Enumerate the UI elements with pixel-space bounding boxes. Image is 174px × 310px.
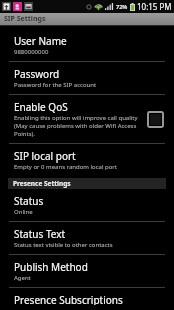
staticText: Presence Subscriptions	[14, 293, 123, 305]
button[interactable]: Status	[0, 189, 174, 221]
staticText: Online	[14, 208, 33, 216]
staticText: Publish Method	[14, 260, 88, 274]
button[interactable]: Publish Method	[0, 255, 174, 287]
staticText: Status text visible to other contacts	[14, 241, 113, 249]
button[interactable]: Enable QoS	[0, 95, 174, 143]
staticText: SIP Settings	[4, 14, 46, 24]
staticText: Password	[14, 67, 60, 81]
staticText: 10:15 PM	[137, 1, 172, 12]
staticText: User Name	[14, 34, 67, 48]
button[interactable]: Presence Subscriptions	[0, 288, 174, 310]
button[interactable]: Enable QoS	[146, 110, 164, 128]
staticText: 72%	[116, 3, 128, 10]
staticText: Status	[14, 194, 44, 208]
staticText: Agent	[14, 274, 31, 282]
staticText: 9880000000	[14, 48, 49, 56]
button[interactable]: SIP local port	[0, 144, 174, 176]
staticText: Enabling this option will improve call q…	[14, 114, 141, 138]
button[interactable]: SIP Settings	[0, 13, 174, 25]
staticText: SIP local port	[14, 149, 76, 163]
button[interactable]: User Name	[0, 29, 174, 61]
staticText: Enable QoS	[14, 100, 68, 114]
staticText: Status Text	[14, 227, 66, 241]
staticText: Empty or 0 means random local port	[14, 163, 118, 171]
staticText: Password for the SIP account	[14, 81, 97, 89]
staticText: Presence Settings	[13, 179, 71, 188]
button[interactable]: Password	[0, 62, 174, 94]
button[interactable]: Status Text	[0, 222, 174, 254]
